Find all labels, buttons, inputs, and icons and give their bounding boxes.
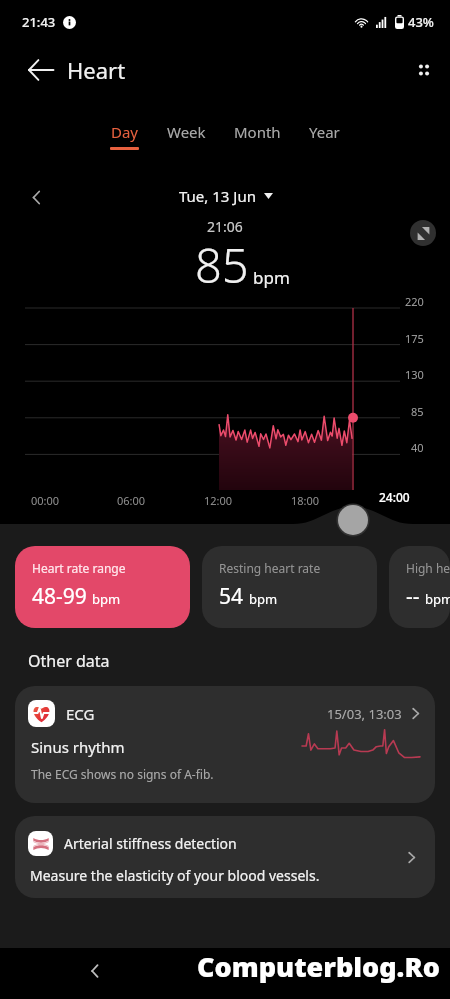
staticText: The ECG shows no signs of A-fib. bbox=[31, 766, 214, 782]
staticText: Day bbox=[111, 122, 139, 142]
button[interactable]: Back bbox=[75, 951, 115, 991]
staticText: 21:43 bbox=[22, 13, 56, 31]
staticText: Computerblog.Ro bbox=[197, 948, 440, 985]
button[interactable]: Arterial stiffness detection bbox=[15, 816, 435, 898]
staticText: 175 bbox=[405, 331, 424, 346]
staticText: ECG bbox=[66, 704, 95, 724]
staticText: 130 bbox=[405, 367, 424, 382]
staticText: Heart bbox=[67, 55, 126, 85]
staticText: 24:00 bbox=[379, 489, 410, 505]
staticText: Tue, 13 Jun bbox=[179, 186, 256, 206]
staticText: 40 bbox=[411, 440, 424, 455]
staticText: 85 bbox=[195, 233, 249, 297]
button[interactable]: Day bbox=[96, 118, 153, 154]
staticText: Measure the elasticity of your blood ves… bbox=[30, 866, 320, 885]
staticText: 12:00 bbox=[204, 493, 233, 508]
button[interactable]: More options bbox=[398, 44, 450, 96]
staticText: Month bbox=[234, 122, 281, 142]
button[interactable]: Heart rate range bbox=[15, 546, 190, 628]
staticText: Computerblog.Ro bbox=[197, 948, 440, 985]
staticText: Other data bbox=[28, 650, 110, 672]
staticText: 54 bbox=[219, 582, 244, 611]
button[interactable]: Resting heart rate bbox=[202, 546, 377, 628]
staticText: 43% bbox=[408, 13, 434, 31]
button[interactable]: High heart rate bbox=[389, 546, 450, 628]
staticText: 48-99 bbox=[32, 582, 87, 611]
staticText: -- bbox=[406, 582, 420, 611]
button[interactable]: Tue, 13 Jun bbox=[175, 182, 277, 210]
staticText: 06:00 bbox=[117, 493, 146, 508]
staticText: Week bbox=[167, 122, 206, 142]
staticText: 220 bbox=[405, 294, 424, 309]
staticText: Arterial stiffness detection bbox=[64, 834, 237, 853]
staticText: Heart rate range bbox=[32, 560, 126, 576]
button[interactable]: Previous day bbox=[21, 182, 51, 212]
staticText: Resting heart rate bbox=[219, 560, 321, 576]
staticText: Sinus rhythm bbox=[31, 737, 125, 757]
staticText: 85 bbox=[411, 404, 424, 419]
staticText: Year bbox=[309, 122, 340, 142]
button[interactable]: Expand chart bbox=[410, 220, 436, 246]
button[interactable]: Back bbox=[13, 44, 69, 96]
staticText: bpm bbox=[249, 590, 278, 608]
button[interactable]: Year bbox=[295, 118, 354, 151]
staticText: 21:06 bbox=[207, 217, 243, 236]
staticText: 18:00 bbox=[291, 493, 320, 508]
staticText: bpm bbox=[425, 590, 450, 608]
button[interactable]: Week bbox=[153, 118, 220, 151]
staticText: bpm bbox=[253, 266, 290, 289]
button[interactable]: ECG bbox=[15, 686, 435, 803]
staticText: 00:00 bbox=[31, 493, 60, 508]
staticText: 15/03, 13:03 bbox=[327, 705, 402, 723]
button[interactable]: Month bbox=[220, 118, 295, 151]
staticText: High heart rate bbox=[406, 560, 450, 576]
staticText: bpm bbox=[92, 590, 121, 608]
